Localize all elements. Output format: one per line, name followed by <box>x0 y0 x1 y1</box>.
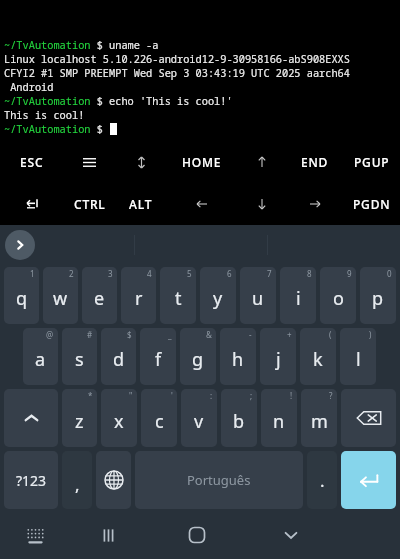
button[interactable]: ; <box>221 389 257 447</box>
staticText: ( <box>329 329 332 340</box>
button[interactable]: Home <box>147 511 247 559</box>
button[interactable]: " <box>101 389 137 447</box>
button[interactable]: $ <box>101 328 136 385</box>
staticText: q <box>16 286 28 311</box>
button[interactable]: Recents <box>70 511 147 559</box>
staticText: b <box>233 409 245 434</box>
button[interactable]: ' <box>141 389 177 447</box>
button[interactable]: Home key <box>167 141 237 183</box>
staticText: CFYI2 #1 SMP PREEMPT Wed Sep 3 03:43:19 … <box>4 66 350 80</box>
staticText: ' <box>171 390 173 401</box>
button[interactable]: Symbols <box>4 451 58 509</box>
staticText: ~/TvAutomation $ <box>4 122 110 136</box>
staticText: " <box>129 390 133 401</box>
button[interactable]: 8 <box>280 267 316 324</box>
button[interactable]: Back <box>247 511 335 559</box>
staticText: ) <box>369 329 372 340</box>
staticText: o <box>333 286 344 311</box>
staticText: PGUP <box>354 154 390 170</box>
button[interactable]: Enter <box>341 451 396 509</box>
button[interactable]: 9 <box>320 267 356 324</box>
button[interactable]: Menu <box>64 141 115 183</box>
button[interactable]: + <box>260 328 296 385</box>
staticText: v <box>194 409 204 434</box>
button[interactable]: 0 <box>360 267 396 324</box>
staticText: * <box>88 390 93 401</box>
staticText: k <box>313 347 323 372</box>
staticText: 6 <box>227 268 232 279</box>
button[interactable]: Escape <box>0 141 64 183</box>
staticText: u <box>252 286 264 311</box>
staticText: 5 <box>187 268 192 279</box>
button[interactable]: Alt <box>115 183 167 225</box>
button[interactable]: Change language <box>96 451 131 509</box>
button[interactable]: Hide keyboard <box>0 511 70 559</box>
button[interactable]: 1 <box>4 267 39 324</box>
staticText: j <box>276 347 281 372</box>
staticText: 1 <box>30 268 35 279</box>
button[interactable]: & <box>180 328 216 385</box>
button[interactable]: - <box>220 328 256 385</box>
staticText: 3 <box>108 268 113 279</box>
button[interactable]: * <box>62 389 97 447</box>
button[interactable]: End key <box>286 141 343 183</box>
button[interactable]: Arrow left <box>167 183 237 225</box>
staticText: ~/TvAutomation $ uname -a <box>4 38 159 52</box>
staticText: + <box>287 329 292 340</box>
button[interactable]: # <box>62 328 97 385</box>
button[interactable]: 4 <box>121 267 156 324</box>
staticText: & <box>206 329 212 340</box>
button[interactable]: ) <box>340 328 376 385</box>
button[interactable]: ? <box>301 389 337 447</box>
staticText: i <box>296 286 301 311</box>
button[interactable]: Comma <box>62 451 92 509</box>
button[interactable]: Period <box>307 451 337 509</box>
button[interactable]: Tab <box>0 183 64 225</box>
staticText: 7 <box>267 268 272 279</box>
button[interactable]: Page down <box>343 183 400 225</box>
button[interactable]: 3 <box>82 267 117 324</box>
staticText: 9 <box>347 268 352 279</box>
staticText: l <box>356 347 361 372</box>
staticText: Português <box>187 471 251 489</box>
button[interactable]: _ <box>140 328 176 385</box>
staticText: CTRL <box>74 196 106 212</box>
staticText: Linux localhost 5.10.226-android12-9-309… <box>4 52 350 66</box>
staticText: ESC <box>20 154 44 170</box>
button[interactable]: Arrow up <box>237 141 286 183</box>
staticText: _ <box>168 329 172 340</box>
staticText: e <box>94 286 105 311</box>
staticText: ; <box>250 390 253 401</box>
button[interactable]: ( <box>300 328 336 385</box>
staticText: f <box>155 347 162 372</box>
staticText: END <box>301 154 329 170</box>
button[interactable]: 5 <box>160 267 196 324</box>
staticText: 8 <box>307 268 312 279</box>
staticText: c <box>155 409 164 434</box>
staticText: - <box>249 329 252 340</box>
button[interactable]: Arrow down <box>237 183 286 225</box>
button[interactable]: Control <box>64 183 115 225</box>
staticText: : <box>210 390 213 401</box>
button[interactable]: ! <box>261 389 297 447</box>
staticText: y <box>213 286 223 311</box>
button[interactable]: @ <box>23 328 58 385</box>
staticText: g <box>192 347 204 372</box>
staticText: PGDN <box>353 196 391 212</box>
staticText: $ <box>127 329 132 340</box>
button[interactable]: Page up <box>343 141 400 183</box>
button[interactable]: Backspace <box>341 389 396 447</box>
button[interactable]: 7 <box>240 267 276 324</box>
button[interactable]: Arrow right <box>286 183 343 225</box>
staticText: This is cool! <box>4 108 85 122</box>
button[interactable]: 2 <box>43 267 78 324</box>
staticText: . <box>320 469 325 492</box>
button[interactable]: : <box>181 389 217 447</box>
staticText: m <box>311 409 328 434</box>
button[interactable]: 6 <box>200 267 236 324</box>
button[interactable]: Shift <box>4 389 58 447</box>
staticText: ?123 <box>16 471 47 490</box>
button[interactable]: Scroll lock <box>115 141 167 183</box>
button[interactable]: Space <box>135 451 303 509</box>
button[interactable]: Expand toolbar <box>5 230 35 260</box>
